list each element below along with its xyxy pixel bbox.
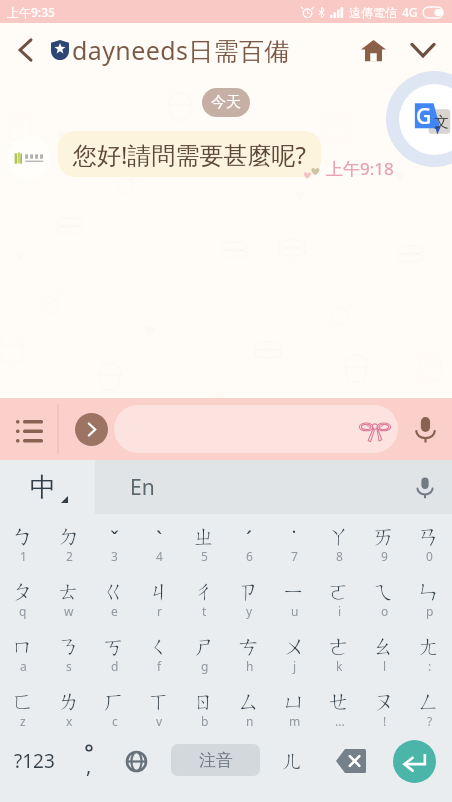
button[interactable]: ㄇ [0, 624, 46, 679]
button[interactable]: Delete [327, 740, 375, 782]
button[interactable]: 中 [0, 460, 95, 514]
button[interactable]: ㄢ [407, 514, 452, 569]
button[interactable]: ㄩ [272, 679, 317, 734]
staticText: ㄤ [418, 633, 441, 661]
button[interactable]: ㄡ [362, 679, 407, 734]
staticText: j [293, 658, 297, 674]
button[interactable]: Expand [404, 31, 442, 69]
staticText: p [426, 603, 434, 619]
button[interactable]: ㄞ [362, 514, 407, 569]
button[interactable]: ㄒ [137, 679, 182, 734]
button[interactable]: Voice message [398, 398, 452, 460]
staticText: En [130, 473, 155, 502]
staticText: 9 [381, 548, 388, 564]
staticText: 2 [66, 548, 73, 564]
staticText: i [338, 603, 342, 619]
button[interactable]: ㄠ [362, 624, 407, 679]
button[interactable]: ㄚ [317, 514, 362, 569]
button[interactable]: ㄥ [407, 679, 452, 734]
staticText: ㄓ [193, 523, 216, 551]
button[interactable]: ㄧ [272, 569, 317, 624]
staticText: s [66, 658, 72, 674]
button[interactable]: ㄣ [407, 569, 452, 624]
button[interactable]: ㄑ [137, 624, 182, 679]
staticText: ˋ [156, 523, 163, 553]
staticText: 4 [156, 548, 163, 564]
staticText: 3 [111, 548, 118, 564]
button[interactable]: Back [8, 33, 42, 67]
button[interactable]: ㄋ [46, 624, 92, 679]
staticText: ㄍ [103, 578, 126, 606]
staticText: ㄇ [12, 633, 35, 661]
button[interactable]: ㄍ [92, 569, 137, 624]
staticText: f [157, 658, 162, 674]
button[interactable]: ㄛ [317, 569, 362, 624]
button[interactable]: ㄤ [407, 624, 452, 679]
staticText: t [202, 603, 207, 619]
button[interactable]: ?123 [3, 731, 65, 791]
button[interactable]: ˋ [137, 514, 182, 569]
staticText: 5 [201, 548, 208, 564]
staticText: ㄡ [373, 688, 396, 716]
button[interactable]: ˇ [92, 514, 137, 569]
button[interactable] [114, 405, 398, 453]
staticText: 0 [426, 548, 433, 564]
button[interactable]: Change language [112, 731, 160, 791]
button[interactable]: ㄙ [227, 679, 272, 734]
button[interactable]: ㄅ [0, 514, 46, 569]
button[interactable]: , [66, 731, 111, 791]
staticText: ㄨ [283, 633, 306, 661]
button[interactable]: More [75, 413, 108, 446]
button[interactable]: ㄨ [272, 624, 317, 679]
staticText: l [383, 658, 387, 674]
button[interactable]: ㄟ [362, 569, 407, 624]
button[interactable]: ㄜ [317, 624, 362, 679]
staticText: ㄉ [58, 523, 81, 551]
button[interactable]: Menu [0, 398, 58, 460]
button[interactable]: ㄊ [46, 569, 92, 624]
button[interactable]: ㄉ [46, 514, 92, 569]
button[interactable]: ㄈ [0, 679, 46, 734]
staticText: ㄊ [58, 578, 81, 606]
button[interactable]: ㄕ [182, 624, 227, 679]
button[interactable]: ˊ [227, 514, 272, 569]
button[interactable]: Google Translate [399, 84, 452, 155]
button[interactable]: ㄐ [137, 569, 182, 624]
staticText: ㄚ [328, 523, 351, 551]
button[interactable]: ㄖ [182, 679, 227, 734]
button[interactable]: ㄝ [317, 679, 362, 734]
staticText: c [112, 713, 118, 729]
button[interactable]: ㄎ [92, 624, 137, 679]
staticText: 上午9:35 [7, 4, 55, 20]
staticText: k [336, 658, 343, 674]
button[interactable]: ㄘ [227, 624, 272, 679]
button[interactable]: ㄔ [182, 569, 227, 624]
staticText: 文 [434, 113, 449, 132]
staticText: ㄒ [148, 688, 171, 716]
staticText: ㄣ [418, 578, 441, 606]
staticText: 7 [291, 548, 298, 564]
staticText: dayneeds日需百備 [72, 33, 290, 67]
staticText: 上午9:18 [326, 157, 394, 180]
button[interactable]: ㄦ [270, 731, 316, 791]
staticText: w [64, 603, 74, 619]
button[interactable]: 注音 [171, 744, 260, 776]
button[interactable]: Voice input [398, 460, 452, 514]
button[interactable]: ㄆ [0, 569, 46, 624]
button[interactable]: 您好!請問需要甚麼呢? [58, 131, 321, 177]
staticText: e [111, 603, 118, 619]
button[interactable]: En [95, 460, 398, 514]
staticText: ... [335, 713, 345, 729]
button[interactable]: Enter [393, 740, 436, 783]
staticText: ㄞ [373, 523, 396, 551]
button[interactable]: ㄌ [46, 679, 92, 734]
staticText: G [416, 102, 432, 131]
button[interactable]: Home [354, 31, 392, 69]
staticText: ㄗ [238, 578, 261, 606]
button[interactable]: ˙ [272, 514, 317, 569]
button[interactable]: 今天 [202, 88, 250, 117]
button[interactable]: ㄗ [227, 569, 272, 624]
staticText: ㄘ [238, 633, 261, 661]
button[interactable]: ㄓ [182, 514, 227, 569]
button[interactable]: ㄏ [92, 679, 137, 734]
